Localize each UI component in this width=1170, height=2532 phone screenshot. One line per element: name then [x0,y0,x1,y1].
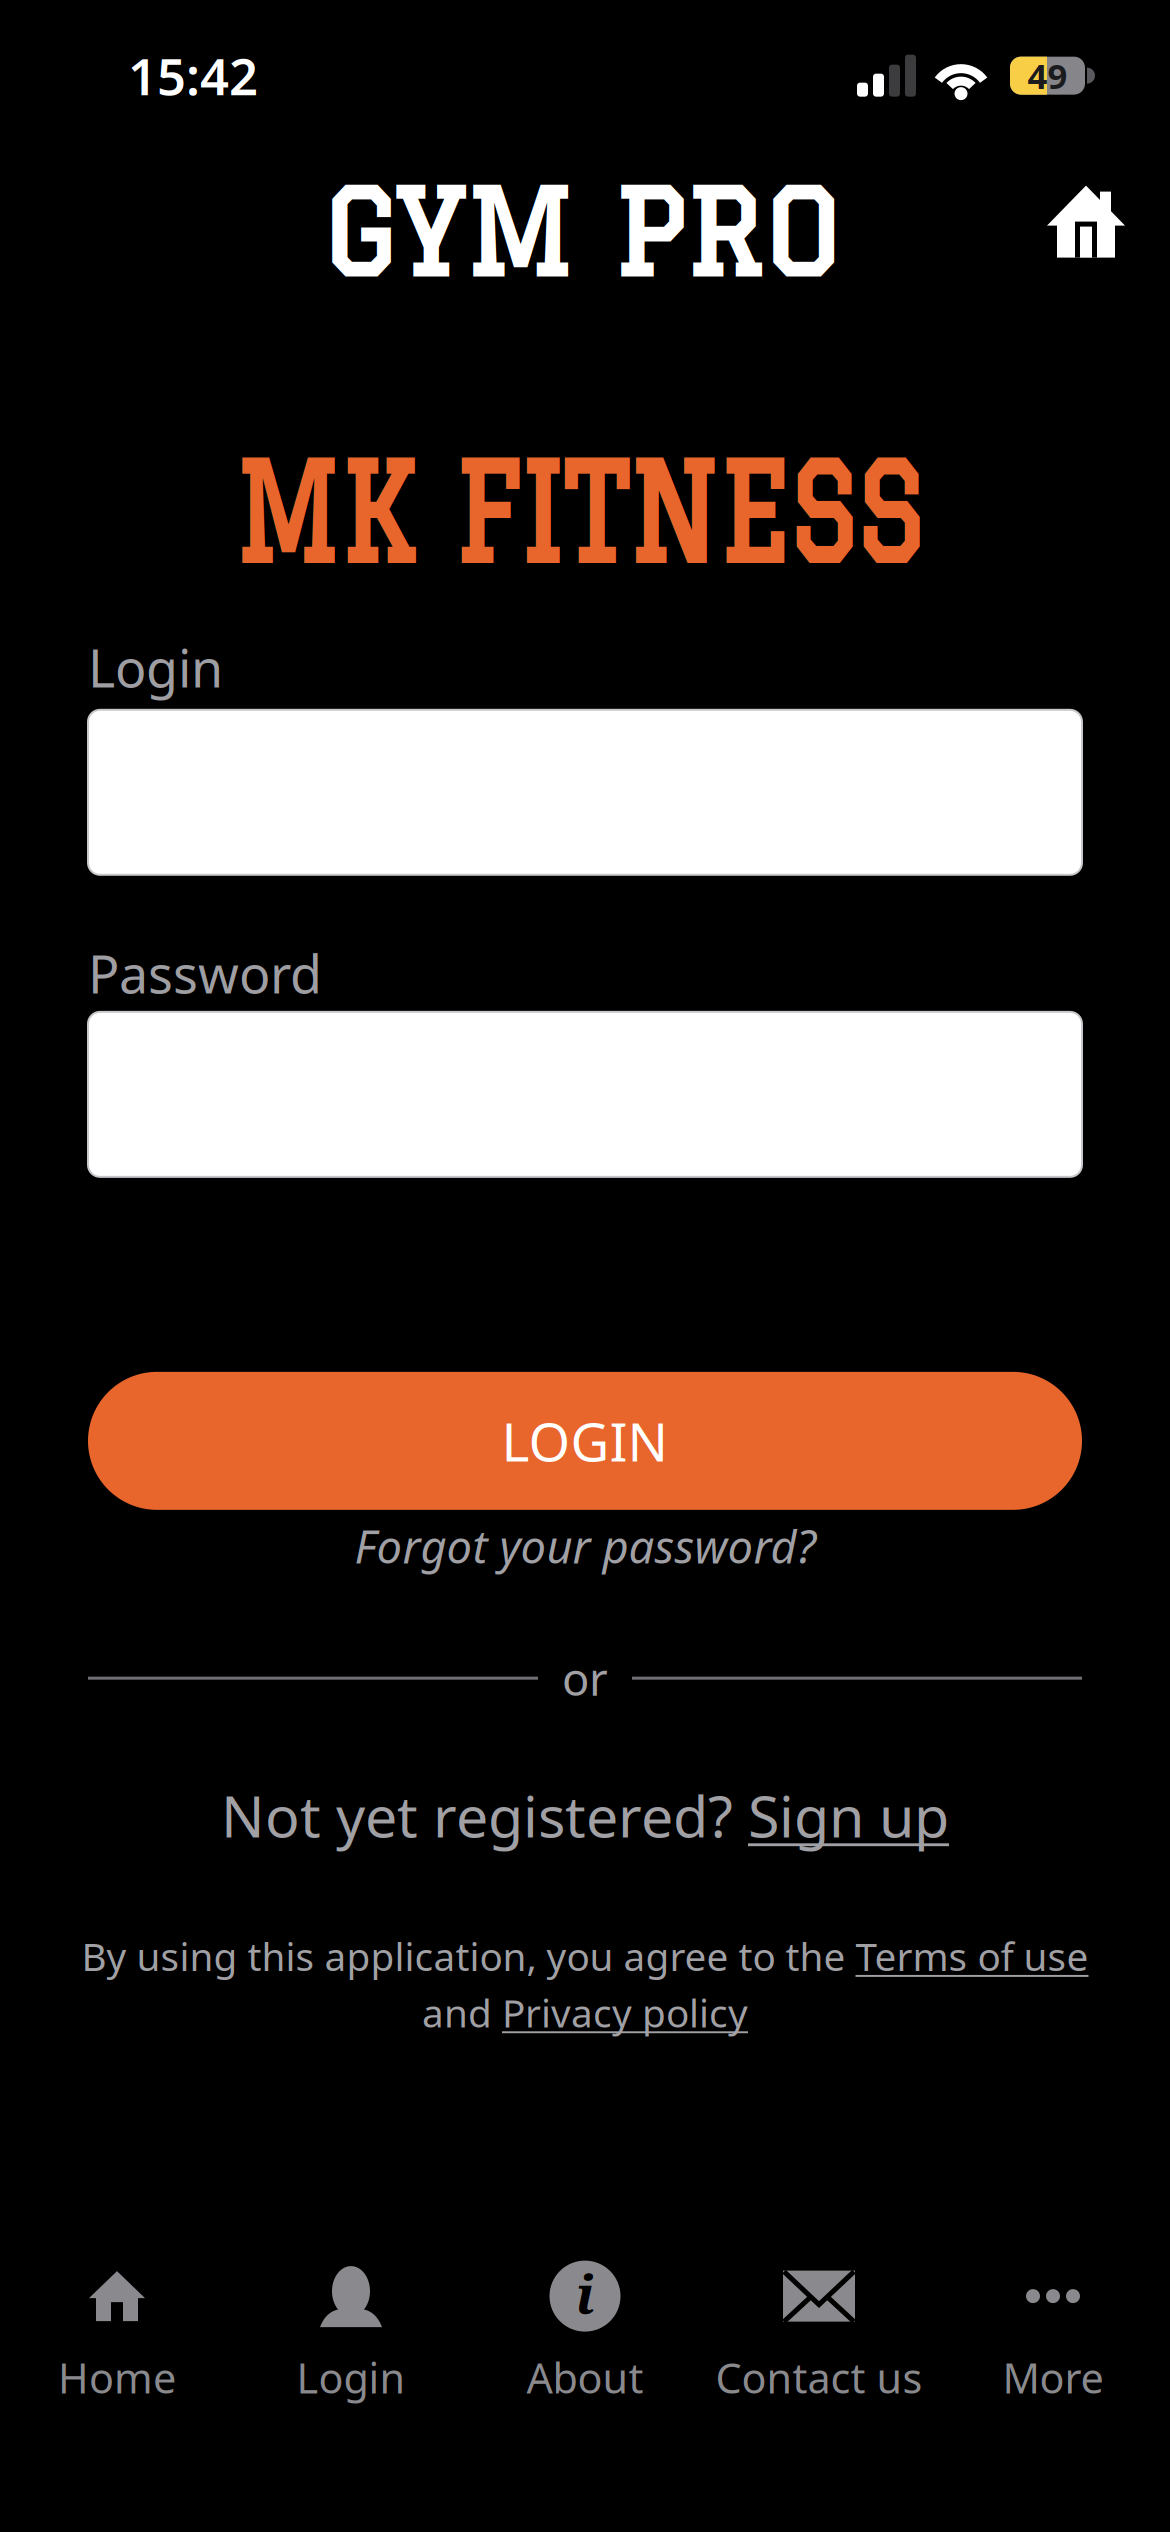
staticText: By using this application, you agree to … [81,1930,1088,1982]
staticText: Home [58,2350,176,2405]
button[interactable]: Home [1050,186,1122,258]
button[interactable]: Password text field [88,1012,1082,1177]
staticText: LOGIN [501,1405,668,1476]
staticText: More [1002,2350,1103,2405]
staticText: MK FITNESS [166,436,989,588]
staticText: 49 [1027,53,1067,99]
button[interactable]: More [936,2256,1170,2405]
button[interactable]: Login [234,2256,468,2405]
button[interactable]: Home [0,2256,234,2405]
staticText: About [526,2350,643,2405]
button[interactable]: and Privacy policy [422,1987,748,2038]
staticText: Password [88,939,322,1008]
staticText: i [575,2257,594,2329]
staticText: Login [296,2350,405,2405]
staticText: Forgot your password? [354,1516,815,1576]
button[interactable]: i [468,2256,702,2405]
staticText: and Privacy policy [422,1987,748,2038]
staticText: or [562,1648,608,1708]
button[interactable]: Forgot your password? [88,1516,1082,1576]
staticText: Login [88,633,223,702]
staticText: 15:42 [128,42,258,109]
staticText: GYM PRO [323,167,839,298]
button[interactable]: Login text field [88,710,1082,875]
button[interactable]: By using this application, you agree to … [81,1930,1088,1982]
button[interactable]: Not yet registered? Sign up [88,1777,1082,1853]
button[interactable]: LOGIN [88,1372,1082,1510]
staticText: Not yet registered? Sign up [221,1777,949,1853]
button[interactable]: Contact us [702,2256,936,2405]
staticText: Contact us [715,2350,922,2405]
